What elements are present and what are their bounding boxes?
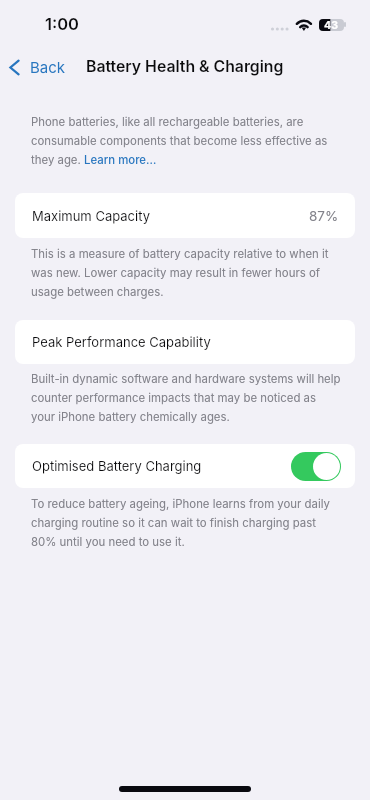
button[interactable]: Maximum Capacity <box>15 193 355 238</box>
staticText: Phone batteries, like all rechargeable b… <box>31 115 337 167</box>
staticText: Optimised Battery Charging <box>32 458 202 474</box>
staticText: Maximum Capacity <box>32 208 150 224</box>
button[interactable]: Back <box>0 50 76 84</box>
button[interactable]: Optimised Battery Charging toggle, on <box>291 452 341 481</box>
staticText: 87% <box>309 208 339 224</box>
staticText: Peak Performance Capability <box>32 334 211 350</box>
button[interactable]: Peak Performance Capability <box>15 320 355 364</box>
staticText: Back <box>30 58 66 76</box>
staticText: Battery Health & Charging <box>86 57 284 76</box>
staticText: Built-in dynamic software and hardware s… <box>31 372 342 424</box>
staticText: To reduce battery ageing, iPhone learns … <box>31 497 342 549</box>
staticText: 43 <box>324 19 339 31</box>
staticText: 1:00 <box>45 14 80 34</box>
staticText: This is a measure of battery capacity re… <box>31 247 342 299</box>
